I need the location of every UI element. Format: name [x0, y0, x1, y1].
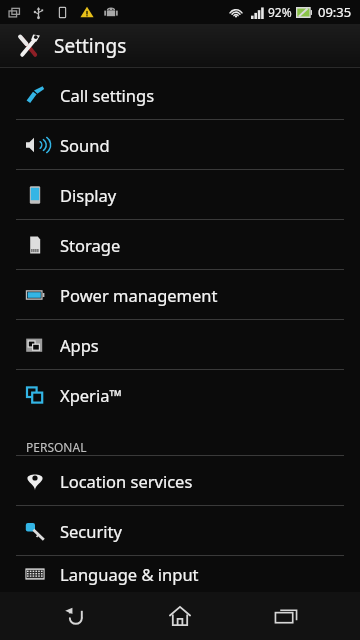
- button[interactable]: Xperia™: [0, 370, 360, 419]
- staticText: Storage: [60, 234, 121, 256]
- button[interactable]: Call settings: [0, 70, 360, 119]
- button[interactable]: Back: [42, 592, 106, 640]
- staticText: 92%: [268, 4, 292, 20]
- button[interactable]: Sound: [0, 120, 360, 169]
- staticText: Security: [60, 520, 122, 542]
- staticText: Power management: [60, 284, 218, 306]
- button[interactable]: Location services: [0, 456, 360, 505]
- staticText: Apps: [60, 334, 99, 356]
- button[interactable]: Security: [0, 506, 360, 555]
- staticText: Settings: [54, 33, 127, 59]
- staticText: Language & input: [60, 563, 199, 585]
- button[interactable]: Home: [148, 592, 212, 640]
- button[interactable]: Recent apps: [254, 592, 318, 640]
- button[interactable]: Power management: [0, 270, 360, 319]
- button[interactable]: Storage: [0, 220, 360, 269]
- staticText: Call settings: [60, 84, 155, 106]
- button[interactable]: Apps: [0, 320, 360, 369]
- button[interactable]: Display: [0, 170, 360, 219]
- button[interactable]: Settings: [0, 24, 360, 68]
- staticText: PERSONAL: [26, 439, 87, 455]
- staticText: Sound: [60, 134, 110, 156]
- staticText: Location services: [60, 470, 193, 492]
- staticText: Xperia™: [60, 384, 123, 406]
- staticText: 09:35: [318, 3, 352, 21]
- staticText: Display: [60, 184, 117, 206]
- button[interactable]: Language & input: [0, 556, 360, 592]
